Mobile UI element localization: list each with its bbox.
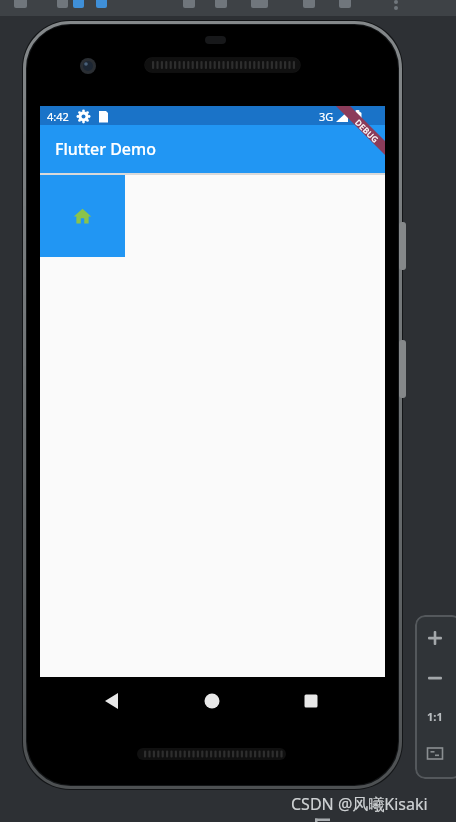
staticText: 3G: [319, 109, 334, 124]
button[interactable]: 1:1: [421, 702, 449, 730]
button[interactable]: [295, 685, 327, 717]
staticText: Flutter Demo: [55, 138, 156, 160]
button[interactable]: [421, 739, 449, 767]
staticText: 4:42: [47, 109, 69, 124]
staticText: DEBUG: [354, 117, 381, 144]
button[interactable]: [196, 685, 228, 717]
staticText: 1:1: [427, 709, 443, 724]
button[interactable]: [40, 175, 125, 257]
button[interactable]: [96, 685, 128, 717]
button[interactable]: [421, 664, 449, 692]
staticText: CSDN @风曦Kisaki: [291, 793, 428, 815]
button[interactable]: [421, 624, 449, 652]
